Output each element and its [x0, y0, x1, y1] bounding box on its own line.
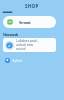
staticText: Play Music [12, 58, 22, 63]
staticText: SHOP [25, 3, 39, 9]
staticText: Remove ads [19, 20, 30, 25]
button[interactable]: Play Music [5, 57, 22, 64]
button[interactable]: SHOP [0, 0, 64, 12]
staticText: New sounds [3, 32, 18, 37]
staticText: Lullabies pack - unlock new sound [16, 39, 39, 51]
button[interactable]: Remove ads [3, 16, 56, 28]
button[interactable] [3, 10, 12, 14]
button[interactable]: Lullabies pack - unlock new sound [3, 38, 56, 52]
